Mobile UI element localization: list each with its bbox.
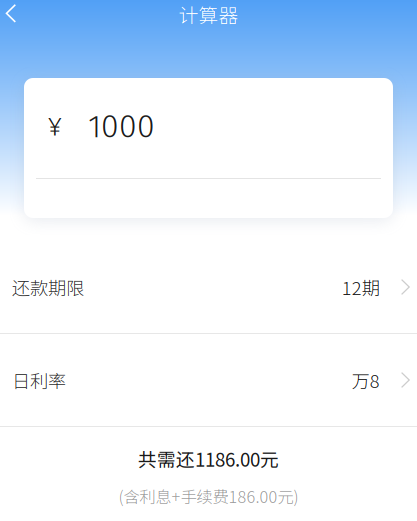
staticText: 1000 xyxy=(88,107,155,146)
button[interactable]: 还款期限 xyxy=(0,241,417,333)
staticText: ¥ xyxy=(48,110,62,142)
staticText: 日利率 xyxy=(12,367,66,393)
staticText: 计算器 xyxy=(178,0,238,29)
staticText: 共需还1186.00元 xyxy=(138,445,279,472)
staticText: (含利息+手续费186.00元) xyxy=(118,484,298,508)
button[interactable]: 日利率 xyxy=(0,334,417,426)
staticText: 12期 xyxy=(342,274,380,300)
button[interactable]: Back xyxy=(0,0,32,31)
staticText: 还款期限 xyxy=(12,274,84,300)
staticText: 万8 xyxy=(352,367,380,393)
